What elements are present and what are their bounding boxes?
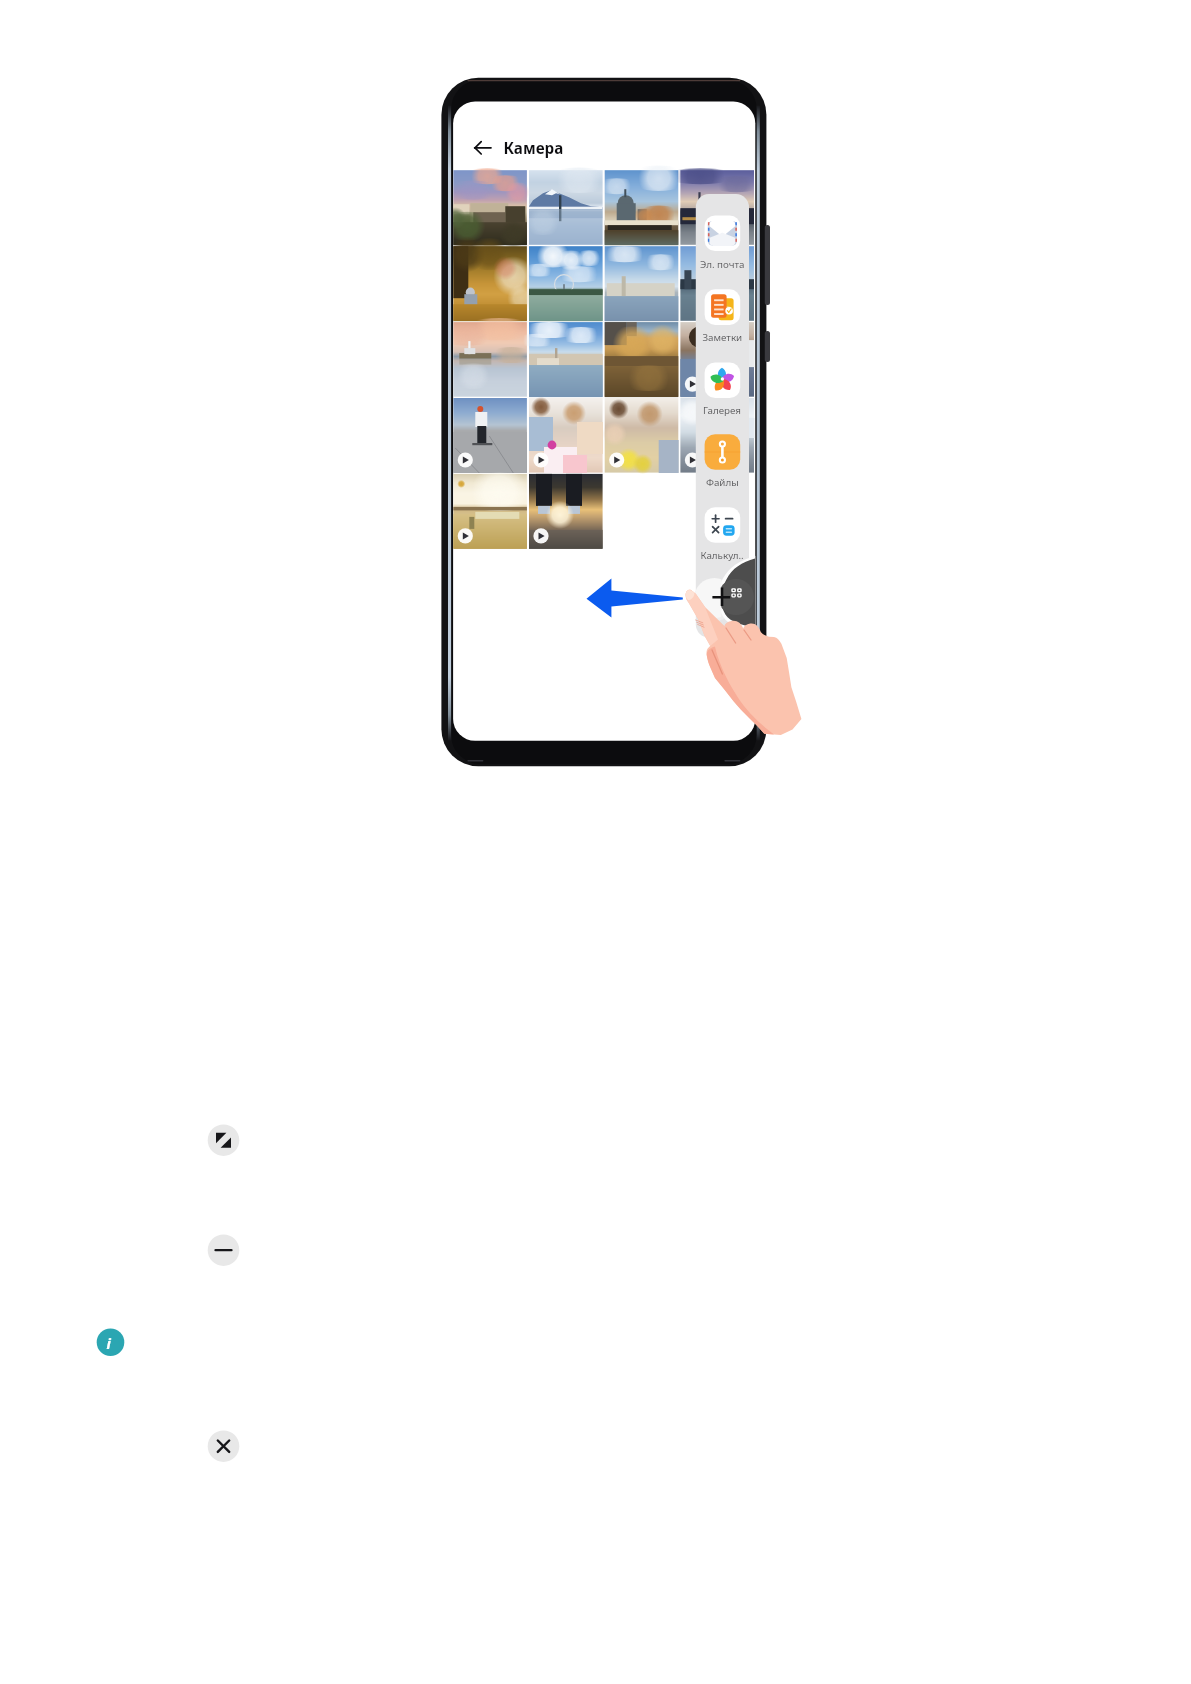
button[interactable]: Фото 18 [529,474,603,549]
button[interactable]: Калькулятор [696,504,749,560]
button[interactable]: Информация [97,1329,124,1356]
button[interactable]: Фото 12 [680,322,754,397]
button[interactable]: Эл. почта [696,213,749,269]
button[interactable]: Фото 2 [529,170,603,245]
button[interactable]: Фото 4 [680,170,754,245]
button[interactable]: Фото 6 [529,246,603,321]
button[interactable]: Фото 8 [680,246,754,321]
button[interactable]: Фото 7 [605,246,679,321]
button[interactable]: Фото 13 [453,398,527,473]
button[interactable]: Открыть панель приложений [695,578,735,618]
button[interactable]: Фото 1 [453,170,527,245]
button[interactable]: Свернуть [207,1234,240,1267]
button[interactable]: Фото 17 [453,474,527,549]
button[interactable]: Фото 5 [453,246,527,321]
button[interactable]: Контрастность [207,1124,240,1157]
button[interactable]: Галерея [696,359,749,415]
button[interactable]: Фото 10 [529,322,603,397]
button[interactable]: Камера [496,130,586,164]
button[interactable]: Фото 3 [605,170,679,245]
button[interactable]: Заметки [696,286,749,342]
button[interactable]: Фото 16 [680,398,754,473]
button[interactable]: Фото 9 [453,322,527,397]
button[interactable]: Фото 15 [605,398,679,473]
button[interactable]: Back [474,134,502,162]
button[interactable]: Фото 14 [529,398,603,473]
button[interactable]: Закрыть [207,1430,240,1463]
button[interactable]: Файлы [696,431,749,487]
button[interactable]: Фото 11 [605,322,679,397]
